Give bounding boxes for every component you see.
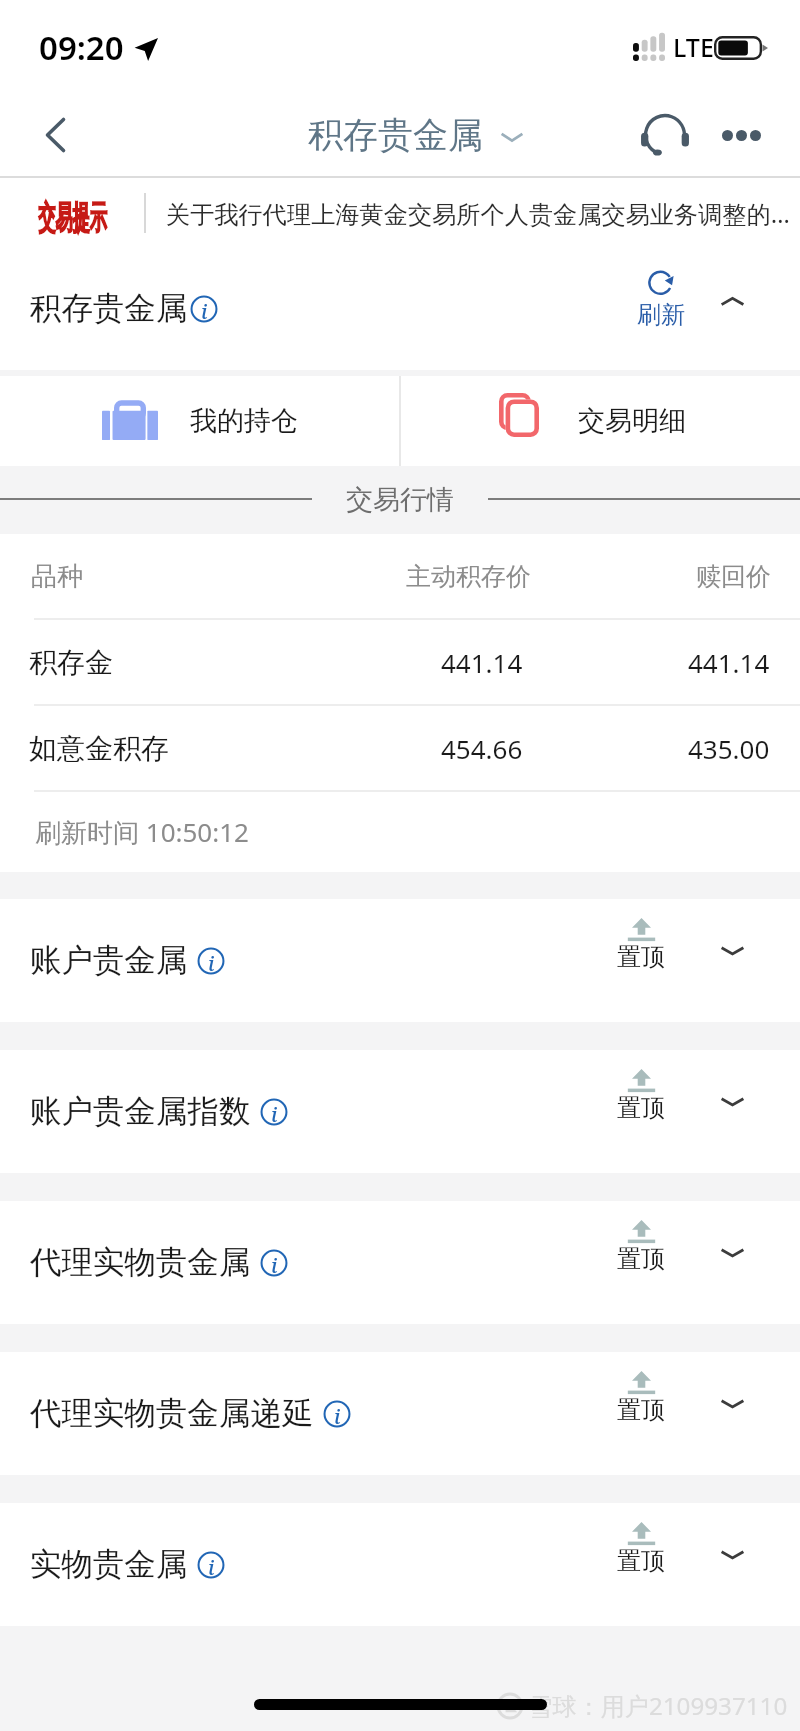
button[interactable]: Expand	[703, 1073, 761, 1131]
button[interactable]: 积存贵金属	[0, 248, 800, 370]
staticText: 如意金积存	[29, 731, 169, 766]
staticText: 积存贵金属	[30, 289, 188, 329]
staticText: 账户贵金属指数	[30, 1092, 251, 1132]
button[interactable]: 代理实物贵金属	[0, 1201, 800, 1324]
button[interactable]: 置顶	[609, 1358, 673, 1468]
staticText: 置顶	[617, 1244, 665, 1274]
staticText: 积存金	[29, 645, 113, 680]
button[interactable]: Expand	[703, 1224, 761, 1282]
staticText: i	[271, 1251, 278, 1278]
button[interactable]: More options	[698, 92, 784, 178]
staticText: i	[208, 1553, 215, 1580]
staticText: 435.00	[688, 731, 770, 766]
staticText: i	[334, 1402, 341, 1429]
staticText: 置顶	[617, 1546, 665, 1576]
staticText: 交易行情	[346, 483, 454, 517]
staticText: 品种	[31, 560, 83, 593]
staticText: 关于我行代理上海黄金交易所个人贵金属交易业务调整的…	[166, 197, 790, 230]
button[interactable]: Expand	[703, 922, 761, 980]
staticText: 赎回价	[696, 561, 771, 592]
staticText: 置顶	[617, 1093, 665, 1123]
staticText: 刷新	[637, 300, 685, 330]
button[interactable]: 交易明细	[400, 376, 800, 466]
staticText: 代理实物贵金属	[30, 1243, 251, 1283]
staticText: LTE	[673, 30, 714, 64]
staticText: 交易明细	[578, 404, 686, 438]
staticText: 置顶	[617, 1395, 665, 1425]
button[interactable]: Customer service	[622, 92, 708, 178]
button[interactable]: 我的持仓	[0, 376, 400, 466]
button[interactable]: 账户贵金属指数	[0, 1050, 800, 1173]
staticText: 置顶	[617, 942, 665, 972]
staticText: 积存贵金属	[308, 113, 483, 157]
button[interactable]: Back	[0, 92, 96, 178]
staticText: 09:20	[39, 25, 124, 70]
button[interactable]: Expand	[703, 1375, 761, 1433]
staticText: 441.14	[441, 645, 523, 680]
button[interactable]: 刷新	[628, 253, 694, 369]
staticText: i	[208, 949, 215, 976]
button[interactable]: 置顶	[609, 905, 673, 1015]
button[interactable]: Collapse	[703, 272, 761, 330]
button[interactable]: 交易提示	[0, 178, 800, 248]
button[interactable]: 置顶	[609, 1207, 673, 1317]
button[interactable]: 置顶	[609, 1509, 673, 1619]
button[interactable]: 置顶	[609, 1056, 673, 1166]
staticText: 我的持仓	[190, 404, 298, 438]
button[interactable]: 账户贵金属	[0, 899, 800, 1022]
staticText: 雪球：用户2109937110	[528, 1689, 788, 1722]
staticText: 主动积存价	[406, 561, 531, 592]
staticText: i	[201, 297, 208, 324]
staticText: 刷新时间 10:50:12	[35, 814, 249, 850]
staticText: 实物贵金属	[30, 1545, 188, 1585]
button[interactable]: 实物贵金属	[0, 1503, 800, 1626]
staticText: 账户贵金属	[30, 941, 188, 981]
button[interactable]: 积存贵金属	[304, 92, 519, 178]
staticText: 454.66	[441, 731, 523, 766]
button[interactable]: Expand	[703, 1526, 761, 1584]
staticText: i	[271, 1100, 278, 1127]
staticText: 441.14	[688, 645, 770, 680]
staticText: 代理实物贵金属递延	[30, 1394, 314, 1434]
staticText: 交易提示	[38, 197, 107, 239]
button[interactable]: 代理实物贵金属递延	[0, 1352, 800, 1475]
